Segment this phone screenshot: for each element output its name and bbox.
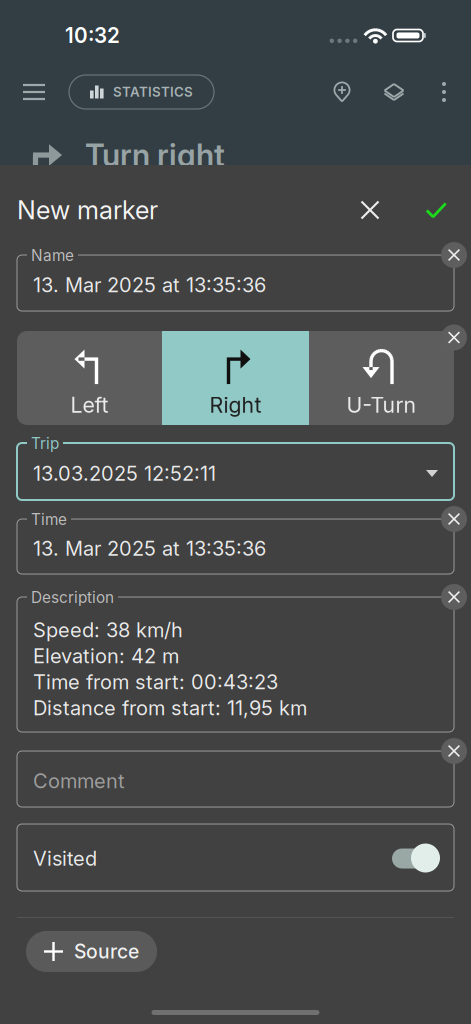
button[interactable]: More options	[428, 70, 460, 114]
staticText: Visited	[33, 846, 97, 871]
staticText: Name	[31, 246, 74, 265]
staticText: STATISTICS	[113, 84, 193, 100]
staticText: Distance from start: 11,95 km	[33, 696, 307, 720]
button[interactable]: Add marker	[320, 70, 364, 114]
staticText: Speed: 38 km/h	[33, 618, 183, 642]
button[interactable]: STATISTICS	[69, 75, 214, 109]
staticText: Trip	[31, 434, 59, 453]
button[interactable]: Clear Name	[441, 242, 467, 268]
staticText: Comment	[33, 769, 125, 793]
staticText: New marker	[17, 195, 158, 225]
button[interactable]: Clear Description	[441, 584, 467, 610]
button[interactable]: Clear direction	[441, 324, 467, 350]
staticText: Time	[31, 510, 67, 529]
staticText: Description	[31, 588, 114, 607]
staticText: 10:32	[65, 23, 120, 48]
button[interactable]: U-Turn	[309, 331, 454, 425]
button[interactable]: Source	[26, 931, 157, 972]
staticText: Turn right	[85, 137, 225, 174]
button[interactable]: Clear	[441, 738, 467, 764]
button[interactable]: Left	[17, 331, 162, 425]
staticText: Left	[70, 392, 108, 418]
button[interactable]: Menu	[23, 75, 45, 109]
staticText: 13.03.2025 12:52:11	[33, 461, 216, 486]
staticText: 13. Mar 2025 at 13:35:36	[33, 536, 266, 561]
staticText: U-Turn	[346, 392, 416, 418]
button[interactable]: Right	[162, 331, 309, 425]
staticText: Right	[209, 392, 261, 418]
button[interactable]: Save	[413, 179, 459, 241]
staticText: Source	[74, 940, 139, 963]
button[interactable]: Clear Time	[441, 506, 467, 532]
staticText: 13. Mar 2025 at 13:35:36	[33, 273, 266, 297]
button[interactable]: Layers	[372, 70, 416, 114]
button[interactable]: Visited	[392, 843, 440, 873]
button[interactable]: Close	[343, 179, 397, 241]
staticText: Time from start: 00:43:23	[33, 670, 278, 694]
staticText: Elevation: 42 m	[33, 644, 179, 668]
